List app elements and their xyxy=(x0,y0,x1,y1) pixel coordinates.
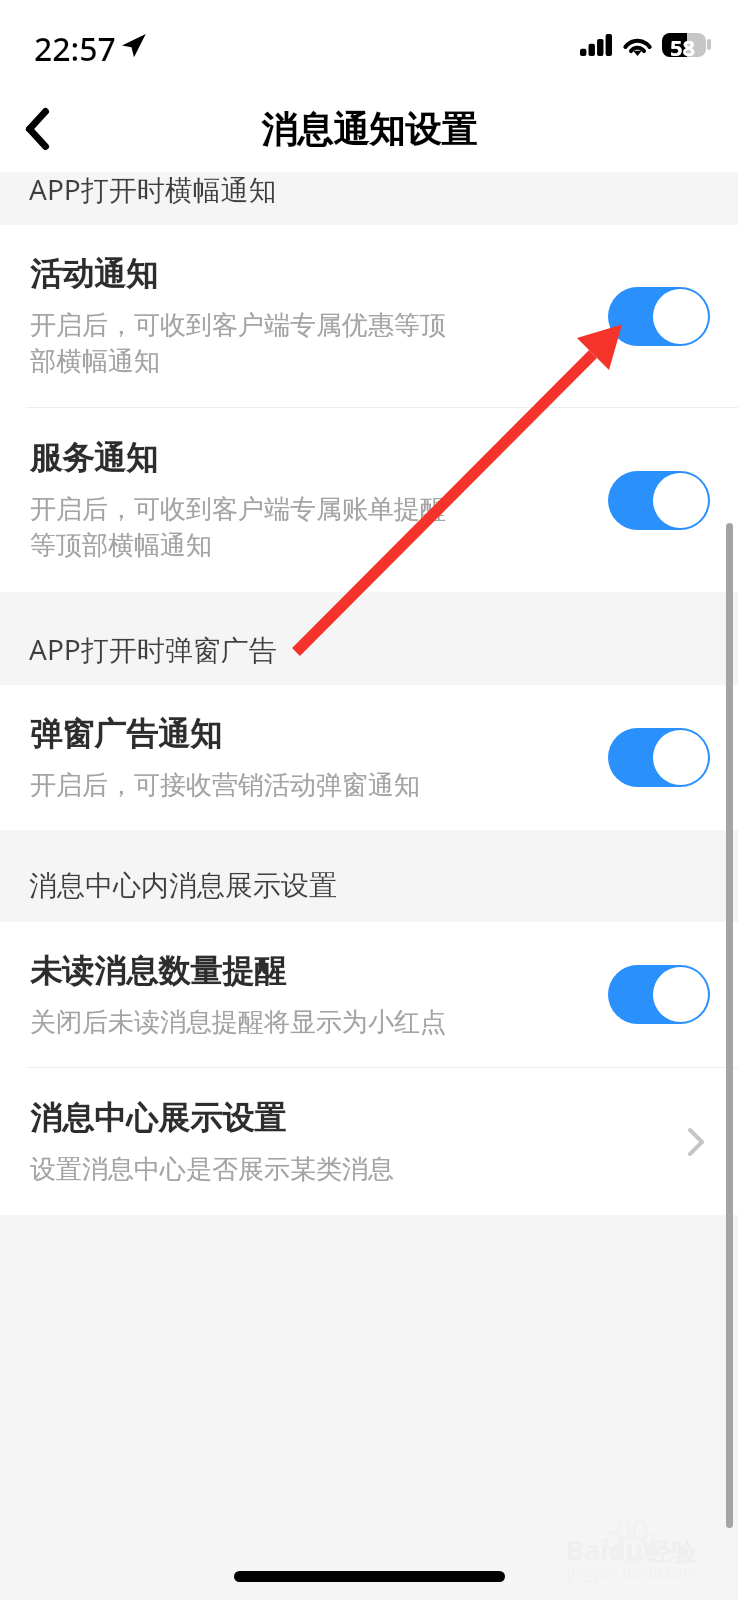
staticText: 消息中心展示设置 xyxy=(30,1098,286,1138)
button[interactable]: Toggle xyxy=(608,287,710,346)
staticText: 设置消息中心是否展示某类消息 xyxy=(30,1153,394,1186)
staticText: 开启后，可接收营销活动弹窗通知 xyxy=(30,769,420,802)
staticText: APP打开时弹窗广告 xyxy=(29,630,277,668)
staticText: 关闭后未读消息提醒将显示为小红点 xyxy=(30,1006,446,1039)
button[interactable]: 服务通知 xyxy=(0,408,738,592)
staticText: 活动通知 xyxy=(30,254,158,294)
staticText: 58 xyxy=(670,32,696,56)
staticText: 消息中心内消息展示设置 xyxy=(29,868,337,903)
staticText: 开启后，可收到客户端专属账单提醒 等顶部横幅通知 xyxy=(30,493,446,562)
staticText: 弹窗广告通知 xyxy=(30,714,222,754)
staticText: 消息通知设置 xyxy=(261,107,477,152)
button[interactable]: Back xyxy=(0,92,74,166)
button[interactable]: Toggle xyxy=(608,965,710,1024)
staticText: 未读消息数量提醒 xyxy=(30,951,286,991)
button[interactable]: 消息中心展示设置 xyxy=(0,1068,738,1215)
staticText: 服务通知 xyxy=(30,438,158,478)
button[interactable]: 弹窗广告通知 xyxy=(0,685,738,830)
button[interactable]: 未读消息数量提醒 xyxy=(0,922,738,1067)
button[interactable]: Toggle xyxy=(608,728,710,787)
staticText: 开启后，可收到客户端专属优惠等顶 部横幅通知 xyxy=(30,309,446,378)
staticText: 22:57 xyxy=(34,27,116,71)
button[interactable]: 活动通知 xyxy=(0,225,738,407)
button[interactable]: Toggle xyxy=(608,471,710,530)
staticText: APP打开时横幅通知 xyxy=(29,170,277,208)
